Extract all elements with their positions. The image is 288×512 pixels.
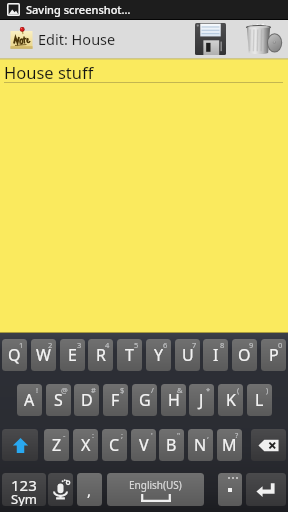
button[interactable]: F <box>103 384 128 416</box>
staticText: 7 <box>192 340 197 350</box>
staticText: T <box>125 344 134 366</box>
staticText: F <box>111 389 120 411</box>
button[interactable]: Voice input <box>48 473 73 506</box>
staticText: 8 <box>220 340 225 350</box>
staticText: * <box>206 385 211 395</box>
button[interactable]: J <box>189 384 214 416</box>
staticText: E <box>68 344 77 366</box>
button[interactable]: 123 <box>2 473 46 506</box>
staticText: N <box>194 434 207 456</box>
staticText: , <box>87 480 92 500</box>
button[interactable]: Shift <box>2 429 38 461</box>
staticText: K <box>226 389 236 411</box>
staticText: S <box>54 389 63 411</box>
button[interactable]: S <box>46 384 71 416</box>
staticText: ; <box>121 430 124 440</box>
staticText: Z <box>52 434 62 456</box>
staticText: / <box>151 385 154 395</box>
staticText: ' <box>151 430 153 440</box>
staticText: Sym <box>11 490 37 506</box>
button[interactable]: C <box>102 429 127 461</box>
staticText: House stuff <box>4 61 94 82</box>
button[interactable]: Delete <box>237 19 288 58</box>
staticText: # <box>91 385 96 395</box>
staticText: M <box>222 434 237 456</box>
staticText: : <box>92 430 95 440</box>
button[interactable]: G <box>132 384 157 416</box>
staticText: 5 <box>134 340 139 350</box>
button[interactable]: Y <box>146 339 171 371</box>
staticText: Y <box>154 344 164 366</box>
staticText: J <box>199 389 204 411</box>
staticText: & <box>177 385 183 395</box>
staticText: R <box>96 344 106 366</box>
button[interactable]: K <box>218 384 243 416</box>
staticText: H <box>168 389 180 411</box>
button[interactable]: I <box>203 339 228 371</box>
button[interactable]: Period <box>218 473 242 506</box>
staticText: - <box>63 430 66 440</box>
staticText: V <box>139 434 149 456</box>
staticText: ) <box>266 385 269 395</box>
staticText: $ <box>120 385 125 395</box>
button[interactable]: V <box>131 429 156 461</box>
staticText: B <box>166 434 177 456</box>
button[interactable]: R <box>88 339 113 371</box>
staticText: , <box>207 430 210 440</box>
staticText: 4 <box>105 340 110 350</box>
staticText: P <box>269 344 279 366</box>
button[interactable]: H <box>161 384 186 416</box>
staticText: W <box>36 344 51 366</box>
staticText: C <box>109 434 120 456</box>
button[interactable]: Save <box>185 19 233 58</box>
staticText: 6 <box>163 340 168 350</box>
staticText: A <box>24 389 35 411</box>
button[interactable]: N <box>188 429 213 461</box>
staticText: 2 <box>48 340 53 350</box>
button[interactable]: O <box>232 339 257 371</box>
staticText: L <box>255 389 264 411</box>
staticText: O <box>238 344 251 366</box>
button[interactable]: Backspace <box>251 429 286 461</box>
button[interactable]: , <box>77 473 102 506</box>
button[interactable]: B <box>159 429 184 461</box>
button[interactable]: Space <box>107 473 204 506</box>
button[interactable]: P <box>261 339 286 371</box>
staticText: 3 <box>77 340 82 350</box>
staticText: Q <box>8 344 21 366</box>
button[interactable]: X <box>73 429 98 461</box>
button[interactable]: U <box>175 339 200 371</box>
staticText: @ <box>61 385 68 395</box>
staticText: 1 <box>19 340 24 350</box>
staticText: Edit: House <box>38 29 116 49</box>
staticText: ( <box>237 385 240 395</box>
staticText: English(US) <box>129 478 182 492</box>
button[interactable]: Z <box>44 429 69 461</box>
staticText: 0 <box>278 340 283 350</box>
staticText: D <box>81 389 93 411</box>
staticText: ! <box>36 385 39 395</box>
button[interactable]: T <box>117 339 142 371</box>
button[interactable]: E <box>60 339 85 371</box>
staticText: " <box>177 430 181 440</box>
staticText: 9 <box>249 340 254 350</box>
button[interactable]: D <box>74 384 99 416</box>
button[interactable]: Q <box>2 339 27 371</box>
staticText: Saving screenshot… <box>26 2 131 17</box>
button[interactable]: A <box>17 384 42 416</box>
staticText: X <box>81 434 91 456</box>
staticText: U <box>182 344 194 366</box>
button[interactable]: L <box>247 384 272 416</box>
staticText: G <box>139 389 151 411</box>
button[interactable]: Enter <box>246 473 286 506</box>
button[interactable]: W <box>31 339 56 371</box>
staticText: ? <box>235 430 239 440</box>
staticText: 123 <box>11 475 37 495</box>
button[interactable]: M <box>217 429 242 461</box>
staticText: I <box>213 344 219 366</box>
